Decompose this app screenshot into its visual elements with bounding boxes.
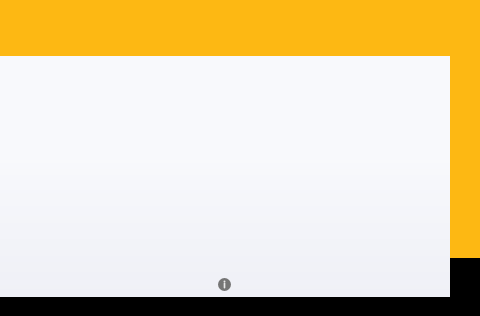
button[interactable]: Info	[218, 278, 231, 291]
